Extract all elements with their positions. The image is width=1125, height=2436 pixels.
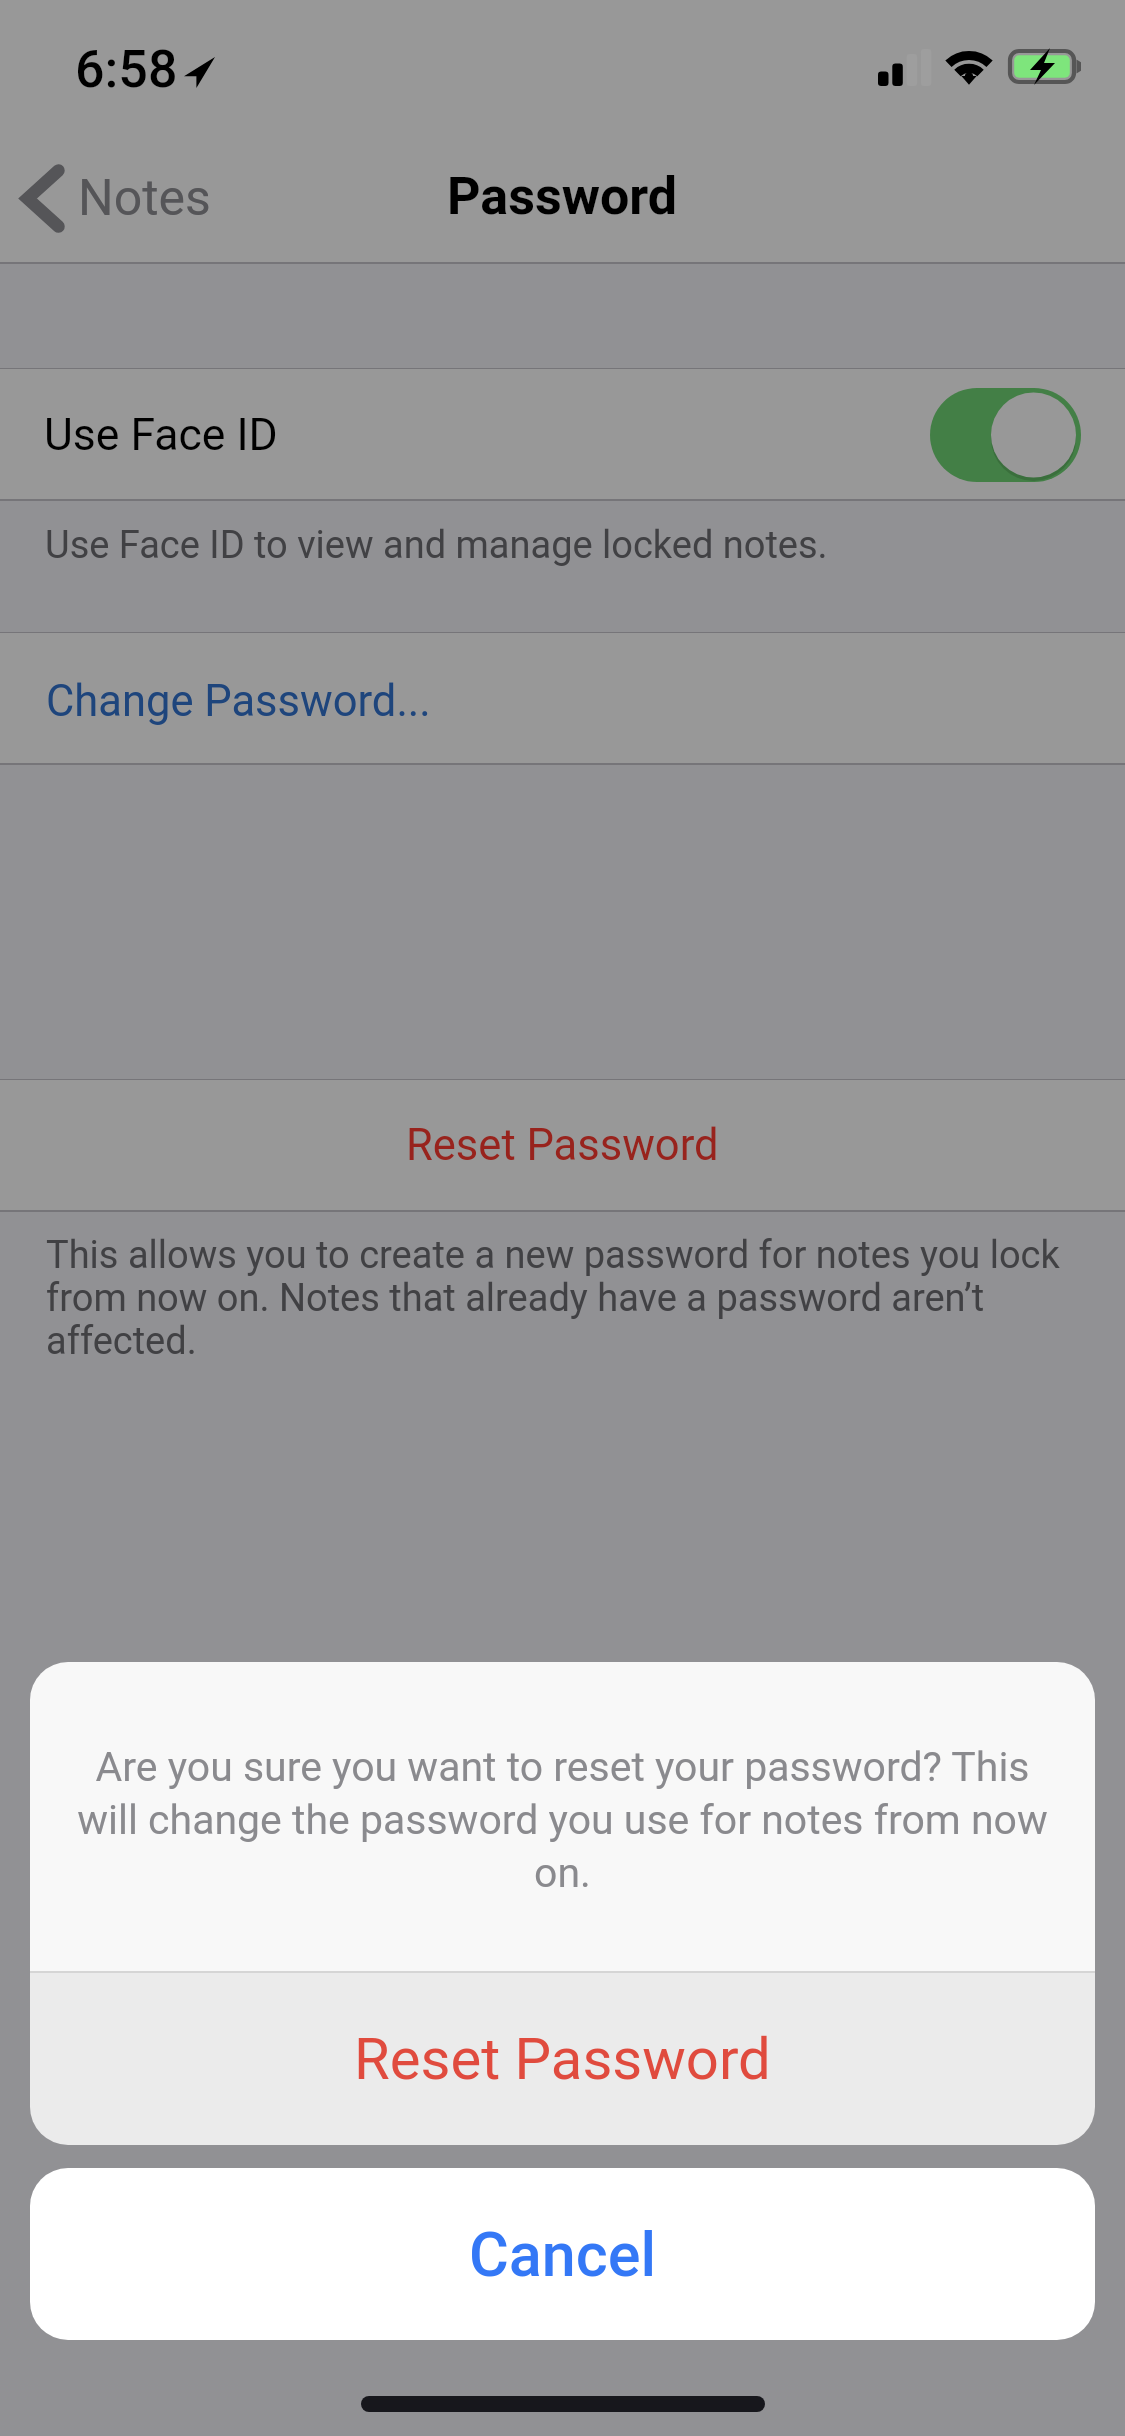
- staticText: Are you sure you want to reset your pass…: [70, 1743, 1055, 1897]
- button[interactable]: Use Face ID: [0, 369, 1125, 500]
- staticText: This allows you to create a new password…: [46, 1233, 1081, 1363]
- staticText: Reset Password: [406, 1120, 719, 1171]
- staticText: Cancel: [469, 2219, 657, 2290]
- button[interactable]: Reset Password: [30, 1973, 1095, 2145]
- button[interactable]: Cancel: [30, 2168, 1095, 2340]
- staticText: 6:58: [75, 39, 178, 100]
- staticText: Password: [447, 166, 678, 227]
- staticText: Notes: [78, 169, 211, 228]
- staticText: Use Face ID to view and manage locked no…: [45, 523, 828, 568]
- button[interactable]: Back to Notes: [0, 156, 233, 241]
- staticText: Use Face ID: [44, 409, 930, 461]
- staticText: Reset Password: [354, 2025, 771, 2093]
- button[interactable]: Use Face ID switch, on: [930, 388, 1081, 482]
- button[interactable]: Change Password...: [0, 633, 1125, 764]
- staticText: Change Password...: [46, 676, 431, 727]
- button[interactable]: Reset Password: [0, 1080, 1125, 1211]
